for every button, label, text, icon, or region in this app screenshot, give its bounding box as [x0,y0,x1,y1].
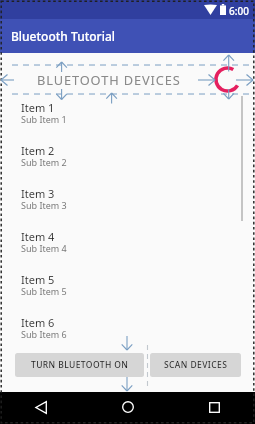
button[interactable]: Item 5 [0,271,255,314]
button[interactable]: Recent apps [200,393,228,421]
staticText: Item 6 [21,315,55,330]
button[interactable]: Item 3 [0,185,255,228]
button[interactable]: Item 2 [0,142,255,185]
button[interactable]: TURN BLUETOOTH ON [15,353,144,377]
button[interactable]: Item 6 [0,314,255,357]
staticText: Sub Item 3 [21,199,67,211]
button[interactable]: Item 1 [0,99,255,142]
staticText: TURN BLUETOOTH ON [31,359,129,371]
staticText: Sub Item 2 [21,156,67,168]
staticText: Item 3 [21,186,55,201]
staticText: Item 4 [21,229,55,244]
staticText: Sub Item 5 [21,285,67,297]
button[interactable]: Back [27,393,55,421]
staticText: Sub Item 6 [21,328,67,340]
staticText: Bluetooth Tutorial [11,28,116,44]
button[interactable]: SCAN DEVICES [150,353,241,377]
staticText: 6:00 [229,4,249,18]
staticText: Item 2 [21,143,55,158]
button[interactable]: Item 4 [0,228,255,271]
staticText: Sub Item 4 [21,242,67,254]
staticText: Item 1 [21,100,55,115]
button[interactable]: Home [114,393,142,421]
staticText: Sub Item 1 [21,113,67,125]
staticText: SCAN DEVICES [164,359,228,371]
staticText: BLUETOOTH DEVICES [37,71,181,88]
staticText: Item 5 [21,272,55,287]
